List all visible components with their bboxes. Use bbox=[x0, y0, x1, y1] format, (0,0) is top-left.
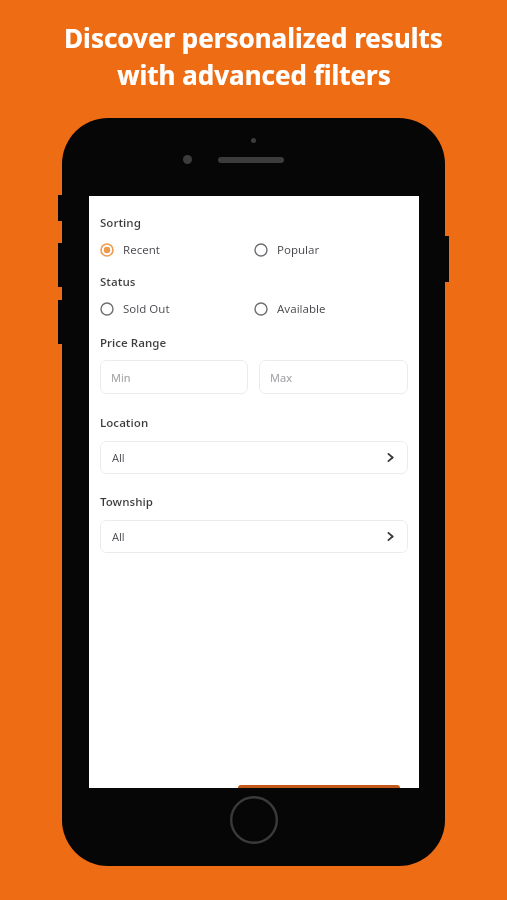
staticText: Recent bbox=[123, 242, 160, 258]
staticText: Sold Out bbox=[123, 301, 170, 317]
button[interactable]: Min bbox=[100, 360, 248, 394]
button[interactable]: Available bbox=[254, 296, 408, 322]
button[interactable]: Popular bbox=[254, 237, 408, 263]
staticText: Discover personalized results bbox=[64, 20, 443, 55]
staticText: All bbox=[112, 529, 125, 544]
staticText: Location bbox=[100, 415, 149, 431]
staticText: Sorting bbox=[100, 215, 141, 231]
button[interactable]: Max bbox=[259, 360, 408, 394]
staticText: Price Range bbox=[100, 335, 167, 351]
staticText: Status bbox=[100, 274, 136, 290]
staticText: Popular bbox=[277, 242, 320, 258]
staticText: with advanced filters bbox=[117, 57, 391, 92]
button[interactable]: All bbox=[100, 520, 408, 553]
staticText: Township bbox=[100, 494, 153, 510]
button[interactable]: Recent bbox=[100, 237, 254, 263]
button[interactable]: Home bbox=[230, 796, 278, 844]
button[interactable] bbox=[238, 785, 400, 788]
staticText: All bbox=[112, 450, 125, 465]
staticText: Available bbox=[277, 301, 326, 317]
button[interactable]: Sold Out bbox=[100, 296, 254, 322]
staticText: Min bbox=[111, 370, 131, 385]
button[interactable]: All bbox=[100, 441, 408, 474]
staticText: Max bbox=[270, 370, 292, 385]
